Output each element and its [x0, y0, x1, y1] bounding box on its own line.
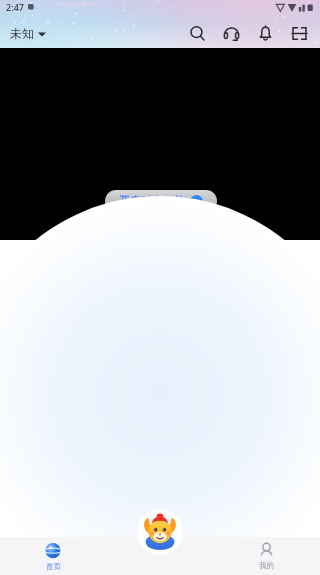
button[interactable]: 开启时空之旅 — [0, 48, 320, 240]
staticText: 未知 — [10, 26, 34, 41]
staticText: 2:47 — [6, 1, 24, 13]
button[interactable]: Search — [184, 20, 210, 46]
staticText: 开启时空之旅 — [119, 194, 185, 208]
button[interactable]: Scan — [286, 20, 312, 46]
button[interactable]: 开启时空之旅 — [105, 190, 217, 212]
button[interactable]: Customer service — [218, 20, 244, 46]
button[interactable]: Assistant — [137, 509, 183, 555]
staticText: 我的 — [259, 561, 274, 570]
staticText: 首页 — [46, 562, 61, 571]
button[interactable]: 未知 — [8, 24, 48, 43]
button[interactable]: 我的 — [213, 537, 320, 575]
button[interactable]: Notifications — [252, 20, 278, 46]
button[interactable]: 首页 — [0, 537, 106, 575]
